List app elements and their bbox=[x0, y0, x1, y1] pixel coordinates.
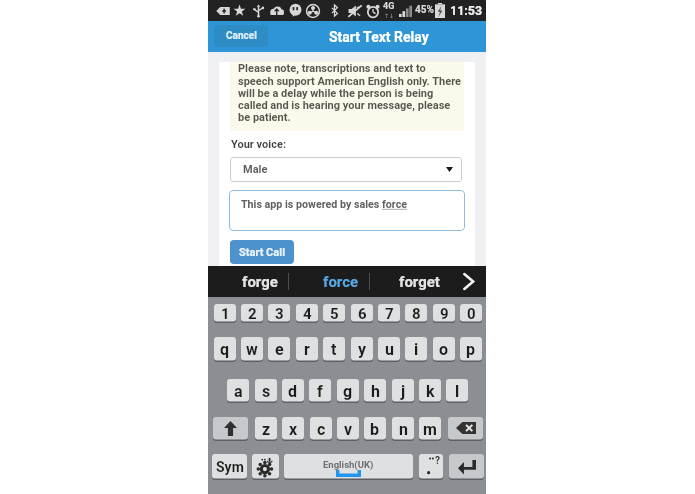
staticText: Male bbox=[243, 163, 268, 176]
staticText: w bbox=[246, 340, 258, 359]
button[interactable]: Cancel bbox=[214, 25, 268, 47]
staticText: j bbox=[401, 382, 406, 401]
staticText: n bbox=[399, 420, 408, 439]
button[interactable]: d bbox=[282, 379, 304, 403]
staticText: force bbox=[382, 198, 408, 211]
staticText: t bbox=[331, 340, 337, 359]
button[interactable]: 0 bbox=[460, 304, 482, 323]
button[interactable]: j bbox=[392, 379, 414, 403]
staticText: l bbox=[455, 382, 460, 401]
staticText: forge bbox=[242, 273, 278, 291]
staticText: 6 bbox=[358, 305, 367, 323]
staticText: forget bbox=[399, 273, 440, 291]
staticText: 3 bbox=[275, 305, 284, 323]
staticText: k bbox=[426, 382, 435, 401]
button[interactable]: q bbox=[214, 337, 236, 362]
staticText: This app is powered by sales bbox=[241, 198, 382, 211]
staticText: ? bbox=[435, 455, 440, 467]
button[interactable]: 8 bbox=[405, 304, 427, 323]
staticText: 8 bbox=[412, 305, 421, 323]
staticText: r bbox=[304, 340, 310, 359]
button[interactable]: l bbox=[446, 379, 468, 403]
button[interactable]: Period bbox=[419, 454, 443, 480]
button[interactable]: w bbox=[241, 337, 263, 362]
button[interactable]: m bbox=[419, 417, 441, 441]
button[interactable]: u bbox=[378, 337, 400, 362]
button[interactable]: 6 bbox=[351, 304, 373, 323]
button[interactable]: n bbox=[392, 417, 414, 441]
button[interactable]: b bbox=[364, 417, 386, 441]
button[interactable]: 3 bbox=[268, 304, 290, 323]
staticText: Start Call bbox=[239, 246, 286, 259]
staticText: e bbox=[275, 340, 284, 359]
staticText: 2 bbox=[248, 305, 257, 323]
button[interactable]: 2 bbox=[241, 304, 263, 323]
staticText: s bbox=[262, 382, 271, 401]
staticText: y bbox=[358, 340, 367, 359]
button[interactable]: g bbox=[337, 379, 359, 403]
button[interactable]: Start Call bbox=[230, 240, 294, 264]
button[interactable]: c bbox=[310, 417, 332, 441]
button[interactable]: 9 bbox=[433, 304, 455, 323]
staticText: 0 bbox=[467, 305, 476, 323]
button[interactable]: r bbox=[296, 337, 318, 362]
button[interactable]: 7 bbox=[378, 304, 400, 323]
button[interactable]: y bbox=[351, 337, 373, 362]
button[interactable]: Settings bbox=[252, 454, 279, 480]
button[interactable]: s bbox=[255, 379, 277, 403]
staticText: b bbox=[370, 420, 380, 439]
button[interactable]: Sym bbox=[212, 454, 247, 480]
button[interactable]: 4 bbox=[296, 304, 318, 323]
button[interactable]: Space bbox=[284, 454, 413, 480]
staticText: English(UK) bbox=[323, 459, 374, 470]
staticText: ↑↓ bbox=[384, 12, 395, 19]
staticText: Start Text Relay bbox=[329, 29, 429, 45]
button[interactable]: Enter bbox=[449, 454, 484, 480]
staticText: o bbox=[439, 340, 449, 359]
staticText: u bbox=[385, 340, 394, 359]
button[interactable]: v bbox=[337, 417, 359, 441]
button[interactable]: a bbox=[227, 379, 249, 403]
staticText: z bbox=[262, 420, 271, 439]
staticText: 45% bbox=[415, 4, 434, 16]
staticText: Please note, transcriptions and text to … bbox=[238, 62, 462, 124]
staticText: h bbox=[371, 382, 380, 401]
staticText: d bbox=[288, 382, 298, 401]
button[interactable]: force bbox=[312, 266, 369, 297]
staticText: 11:53 bbox=[450, 3, 483, 18]
button[interactable]: z bbox=[255, 417, 277, 441]
staticText: c bbox=[317, 420, 326, 439]
staticText: i bbox=[414, 340, 419, 359]
staticText: 9 bbox=[440, 305, 449, 323]
button[interactable]: 5 bbox=[323, 304, 345, 323]
button[interactable]: More suggestions bbox=[450, 266, 486, 297]
button[interactable]: e bbox=[268, 337, 290, 362]
button[interactable]: Male bbox=[230, 157, 462, 182]
button[interactable]: f bbox=[309, 379, 331, 403]
button[interactable]: t bbox=[323, 337, 345, 362]
button[interactable]: This app is powered by sales bbox=[229, 190, 465, 231]
button[interactable]: h bbox=[364, 379, 386, 403]
button[interactable]: k bbox=[419, 379, 441, 403]
staticText: Sym bbox=[216, 459, 244, 475]
button[interactable]: Shift bbox=[213, 417, 248, 441]
button[interactable]: x bbox=[282, 417, 304, 441]
staticText: a bbox=[234, 382, 243, 401]
staticText: 4 bbox=[303, 305, 312, 323]
button[interactable]: i bbox=[405, 337, 427, 362]
staticText: f bbox=[317, 382, 323, 401]
staticText: 4G bbox=[383, 1, 395, 12]
staticText: g bbox=[343, 382, 353, 401]
staticText: q bbox=[220, 340, 230, 359]
staticText: Your voice: bbox=[231, 138, 287, 151]
button[interactable]: p bbox=[460, 337, 482, 362]
button[interactable]: forget bbox=[390, 266, 449, 297]
staticText: force bbox=[323, 273, 359, 291]
staticText: x bbox=[289, 420, 298, 439]
staticText: 7 bbox=[385, 305, 394, 323]
button[interactable]: Backspace bbox=[448, 417, 483, 441]
button[interactable]: 1 bbox=[214, 304, 236, 323]
staticText: m bbox=[423, 420, 437, 439]
button[interactable]: o bbox=[433, 337, 455, 362]
button[interactable]: forge bbox=[231, 266, 288, 297]
